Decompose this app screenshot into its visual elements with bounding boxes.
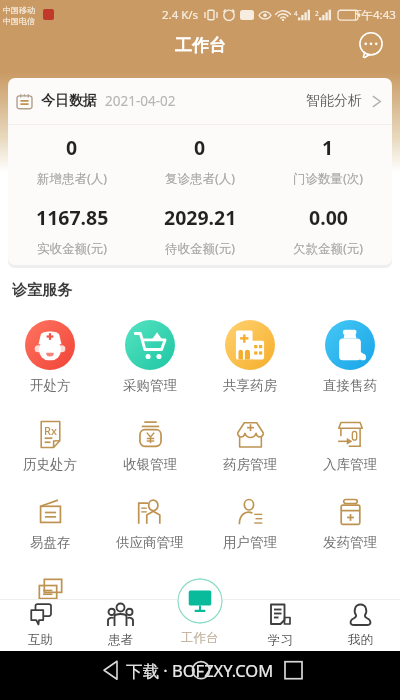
button[interactable] (100, 575, 200, 612)
button[interactable]: 药房管理 (200, 419, 300, 473)
staticText: 供应商管理 (116, 534, 184, 551)
button[interactable] (300, 575, 400, 612)
button[interactable]: 入库管理 (300, 419, 400, 473)
staticText: 收银管理 (123, 456, 177, 473)
staticText: 0.00 (309, 204, 348, 231)
staticText: 中国移动 (3, 5, 35, 15)
button[interactable]: 工作台 (170, 578, 230, 630)
staticText: 工作台 (181, 630, 219, 646)
button[interactable]: 采购管理 (100, 320, 200, 394)
staticText: 互助 (28, 632, 53, 648)
staticText: 门诊数量(次) (293, 170, 364, 187)
button[interactable]: 收银管理 (100, 419, 200, 473)
staticText: 61 (330, 11, 339, 21)
staticText: 采购管理 (123, 377, 177, 394)
button[interactable]: 直接售药 (300, 320, 400, 394)
staticText: 开处方 (30, 377, 71, 394)
staticText: 工作台 (175, 35, 226, 56)
button[interactable]: 患者 (80, 599, 160, 651)
staticText: 2021-04-02 (105, 92, 176, 110)
staticText: 今日数据 (41, 92, 97, 110)
staticText: 直接售药 (323, 377, 377, 394)
staticText: 4 (294, 9, 298, 18)
staticText: 用户管理 (223, 534, 277, 551)
button[interactable]: 互助 (0, 599, 80, 651)
button[interactable]: 发药管理 (300, 497, 400, 551)
button[interactable] (200, 575, 300, 612)
staticText: 我的 (348, 632, 373, 648)
staticText: 实收金额(元) (37, 240, 108, 257)
button[interactable]: 供应商管理 (100, 497, 200, 551)
button[interactable]: Rx (0, 419, 100, 473)
staticText: 学习 (268, 632, 293, 648)
staticText: 待收金额(元) (165, 240, 236, 257)
button[interactable]: 今日数据 (8, 78, 392, 265)
staticText: 下午4:43 (350, 7, 396, 23)
button[interactable]: 我的 (320, 599, 400, 651)
staticText: 1 (322, 134, 334, 161)
staticText: 新增患者(人) (37, 170, 108, 187)
staticText: 2.4 K/s (162, 7, 199, 23)
button[interactable]: 学习 (240, 599, 320, 651)
staticText: 欠款金额(元) (293, 240, 364, 257)
button[interactable]: 易盘存 (0, 497, 100, 551)
staticText: 1167.85 (36, 204, 109, 231)
staticText: 下载 · BOFZXY.COM (126, 659, 274, 682)
staticText: 药房管理 (223, 456, 277, 473)
button[interactable]: 开处方 (0, 320, 100, 394)
staticText: 诊室服务 (12, 281, 72, 300)
button[interactable] (0, 575, 100, 612)
staticText: 中国电信 (3, 16, 35, 26)
staticText: 0 (66, 134, 78, 161)
staticText: 0 (194, 134, 206, 161)
staticText: 易盘存 (30, 534, 71, 551)
button[interactable]: Messages (356, 30, 386, 60)
staticText: 发药管理 (323, 534, 377, 551)
staticText: 入库管理 (323, 456, 377, 473)
staticText: 患者 (108, 632, 133, 648)
staticText: 2 (315, 9, 319, 18)
staticText: 2029.21 (164, 204, 237, 231)
button[interactable]: 用户管理 (200, 497, 300, 551)
staticText: 共享药房 (223, 377, 277, 394)
button[interactable]: 共享药房 (200, 320, 300, 394)
staticText: 智能分析 (306, 92, 362, 110)
staticText: Rx (44, 423, 57, 438)
staticText: 历史处方 (23, 456, 77, 473)
staticText: 复诊患者(人) (165, 170, 236, 187)
